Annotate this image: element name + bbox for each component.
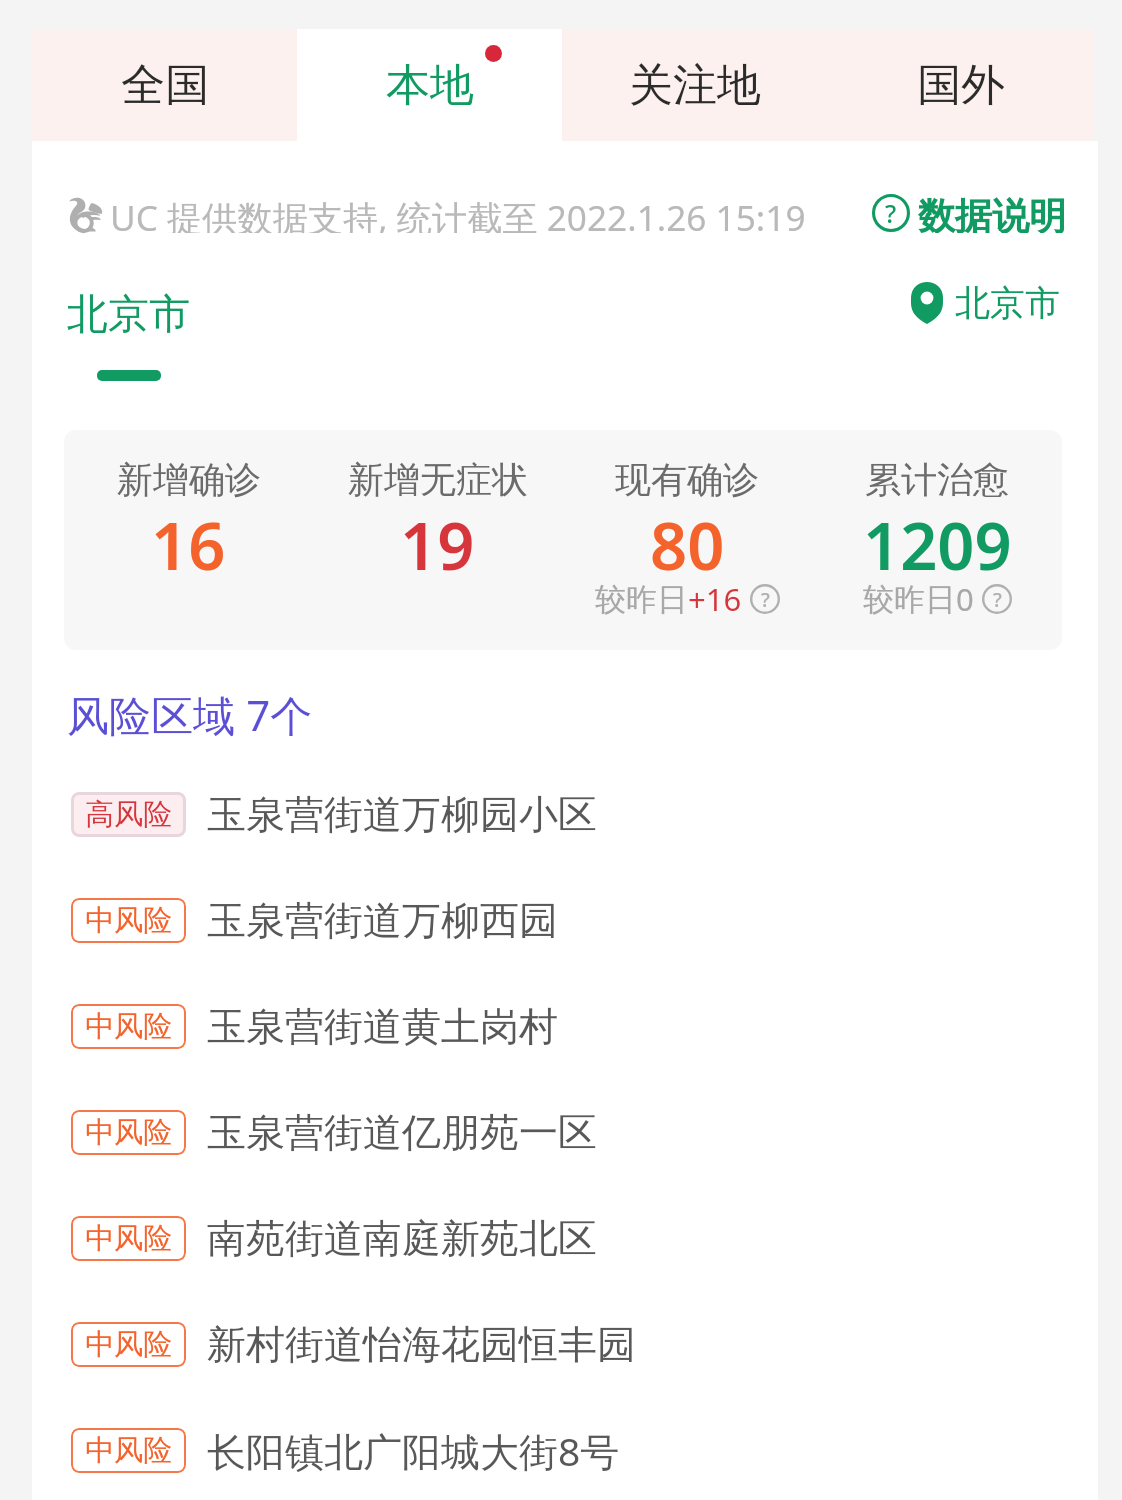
other: 定位 [911,282,943,324]
staticText: 北京市 [67,289,190,341]
staticText: +16 [688,578,742,620]
staticText: 较昨日 [863,580,956,619]
button[interactable]: 中风险 [32,867,1098,973]
button[interactable]: 高风险 [32,761,1098,867]
button[interactable]: 中风险 [32,1397,1098,1500]
staticText: 1209 [863,501,1012,590]
staticText: 长阳镇北广阳城大街8号 [207,1424,620,1477]
staticText: 玉泉营街道亿朋苑一区 [207,1108,597,1157]
staticText: 关注地 [629,58,761,113]
staticText: 新增确诊 [117,457,261,502]
staticText: 全国 [121,58,209,113]
staticText: ? [885,196,897,230]
staticText: 玉泉营街道黄土岗村 [207,1002,558,1051]
staticText: 19 [400,501,475,590]
staticText: ? [993,586,1002,613]
staticText: 南苑街道南庭新苑北区 [207,1214,597,1263]
staticText: 中风险 [85,1008,172,1045]
button[interactable]: 说明 [872,193,1066,233]
button[interactable]: 新增无症状 [313,430,562,650]
button[interactable]: 累计治愈 [812,430,1062,650]
staticText: 玉泉营街道万柳西园 [207,896,558,945]
staticText: UC 提供数据支持, 统计截至 2022.1.26 15:19 [110,193,806,233]
staticText: 现有确诊 [615,457,759,502]
staticText: 新村街道怡海花园恒丰园 [207,1320,636,1369]
staticText: 玉泉营街道万柳园小区 [207,790,597,839]
staticText: 高风险 [85,796,172,833]
button[interactable]: 国外 [828,29,1094,141]
button[interactable]: 定位 [911,281,1060,325]
button[interactable]: 北京市 [67,289,190,381]
button[interactable]: 本地 [297,29,562,141]
staticText: 中风险 [85,1220,172,1257]
button[interactable]: 关注地 [562,29,828,141]
other: 说明 [750,584,780,614]
staticText: ? [761,586,770,613]
staticText: 新增无症状 [348,457,528,502]
staticText: 中风险 [85,1432,172,1469]
staticText: 较昨日 [595,580,688,619]
button[interactable]: 中风险 [32,973,1098,1079]
staticText: 中风险 [85,1114,172,1151]
staticText: 本地 [386,58,474,113]
other: 说明 [982,584,1012,614]
staticText: 风险区域 7个 [67,686,313,743]
staticText: 数据说明 [918,193,1066,233]
staticText: 80 [650,501,725,590]
button[interactable]: 全国 [32,29,297,141]
button[interactable]: 中风险 [32,1291,1098,1397]
button[interactable]: 现有确诊 [562,430,812,650]
staticText: 累计治愈 [865,457,1009,502]
staticText: 中风险 [85,1326,172,1363]
button[interactable]: 中风险 [32,1079,1098,1185]
staticText: 中风险 [85,902,172,939]
staticText: 国外 [917,58,1005,113]
staticText: 16 [151,501,226,590]
other: UC [66,193,106,233]
staticText: 北京市 [955,281,1060,325]
button[interactable]: 新增确诊 [64,430,313,650]
button[interactable]: 中风险 [32,1185,1098,1291]
staticText: 0 [956,578,974,620]
other: 说明 [872,194,910,232]
